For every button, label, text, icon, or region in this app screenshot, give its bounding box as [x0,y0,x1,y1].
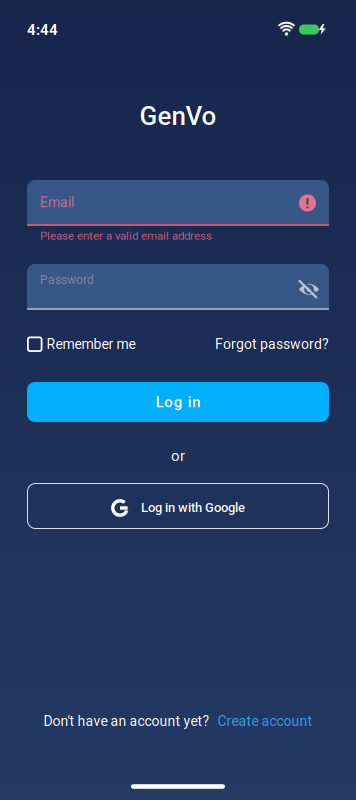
staticText: GenVo [139,101,216,131]
staticText: Log in [156,393,200,411]
staticText: Password [40,273,94,287]
button[interactable]: Password [27,264,329,310]
button[interactable]: Remember me [27,336,135,352]
button[interactable]: Forgot password? [215,336,329,352]
button[interactable]: Create account [217,713,312,729]
button[interactable]: Show password [298,277,320,297]
staticText: Don't have an account yet? [43,713,209,729]
staticText: Please enter a valid email address [40,229,212,242]
staticText: Forgot password? [215,336,329,352]
button[interactable]: Log in with Google [27,483,329,529]
staticText: or [171,447,185,465]
button[interactable]: Email [27,180,329,226]
staticText: Create account [217,713,312,729]
staticText: Email [40,194,74,211]
staticText: Remember me [46,336,135,352]
button[interactable]: Log in [27,382,329,422]
staticText: 4:44 [27,21,58,39]
staticText: Log in with Google [141,500,245,515]
